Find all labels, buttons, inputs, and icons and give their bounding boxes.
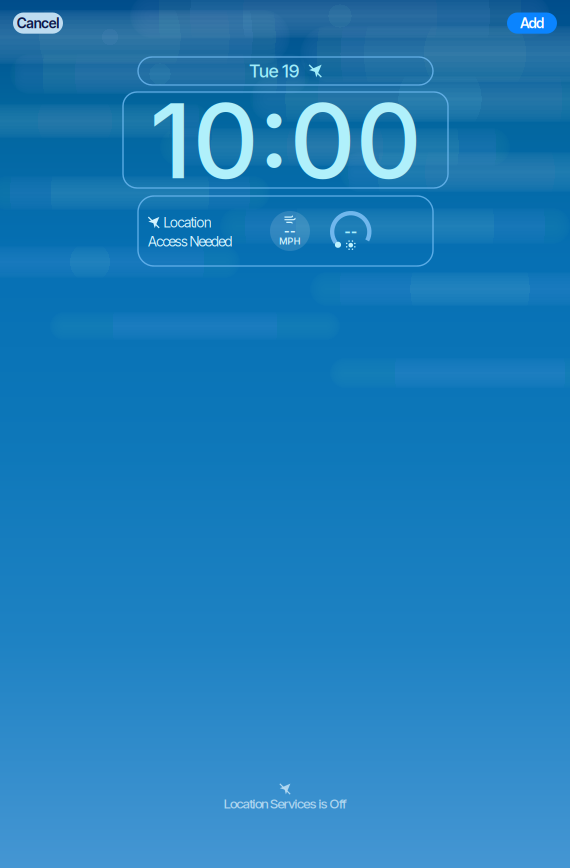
staticText: --	[344, 223, 357, 240]
staticText: 10:00	[149, 79, 421, 203]
staticText: Cancel	[17, 15, 59, 31]
button[interactable]: Add	[507, 12, 557, 34]
staticText: Location Services is Off	[224, 795, 346, 812]
button[interactable]: Cancel	[13, 12, 63, 34]
staticText: Access Needed	[148, 233, 232, 250]
button[interactable]: Location	[138, 196, 433, 266]
staticText: --	[284, 223, 296, 239]
staticText: Tue 19	[249, 60, 300, 82]
staticText: Add	[520, 15, 544, 31]
staticText: MPH	[279, 235, 301, 247]
button[interactable]: 10:00	[123, 92, 448, 188]
staticText: Location	[163, 214, 212, 231]
button[interactable]: Tue 19	[138, 57, 433, 85]
